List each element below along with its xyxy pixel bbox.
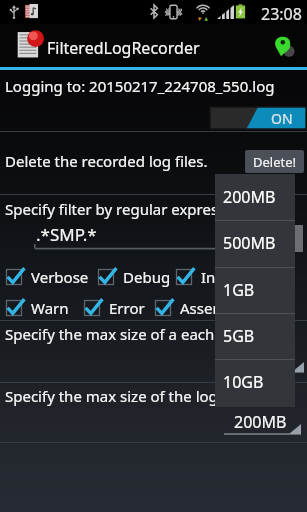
staticText: FilteredLogRecorder — [47, 37, 200, 59]
staticText: Error — [109, 298, 145, 318]
button[interactable]: Logging on/off — [210, 107, 306, 129]
button[interactable]: Assert — [153, 297, 225, 318]
staticText: Delete! — [253, 153, 297, 171]
staticText: Specify filter by regular expression. — [5, 199, 252, 219]
staticText: 200MB — [223, 186, 276, 208]
button[interactable]: 500MB — [215, 220, 295, 266]
button[interactable]: Delete! — [245, 150, 304, 173]
staticText: 1GB — [223, 279, 255, 301]
staticText: Info — [201, 267, 230, 287]
staticText: Specify the max size of the log folder. — [5, 386, 266, 406]
staticText: .*SMP.* — [36, 223, 97, 246]
staticText: 5GB — [223, 325, 255, 347]
button[interactable]: Max folder size — [219, 411, 301, 439]
button[interactable]: Error — [82, 297, 145, 318]
staticText: Specify the max size of a each log file. — [5, 324, 270, 344]
staticText: 23:08 — [261, 3, 302, 25]
button[interactable]: Warn — [4, 297, 69, 318]
staticText: 10GB — [223, 371, 264, 393]
button[interactable]: Location — [267, 29, 301, 63]
staticText: Verbose — [31, 267, 89, 287]
button[interactable]: Debug — [96, 266, 171, 287]
staticText: Debug — [123, 267, 171, 287]
button[interactable]: 5GB — [215, 313, 295, 359]
button[interactable]: 1GB — [215, 267, 295, 313]
staticText: 500MB — [223, 232, 276, 254]
button[interactable]: Info — [174, 266, 230, 287]
staticText: Warn — [31, 298, 69, 318]
button[interactable]: Verbose — [4, 266, 89, 287]
staticText: Delete the recorded log files. — [5, 151, 208, 171]
staticText: Assert — [180, 298, 225, 318]
button[interactable]: 200MB — [215, 174, 295, 220]
staticText: ON — [271, 109, 293, 128]
staticText: 200MB — [234, 411, 287, 433]
button[interactable]: 10GB — [215, 359, 295, 405]
staticText: Logging to: 20150217_224708_550.log — [5, 76, 275, 96]
